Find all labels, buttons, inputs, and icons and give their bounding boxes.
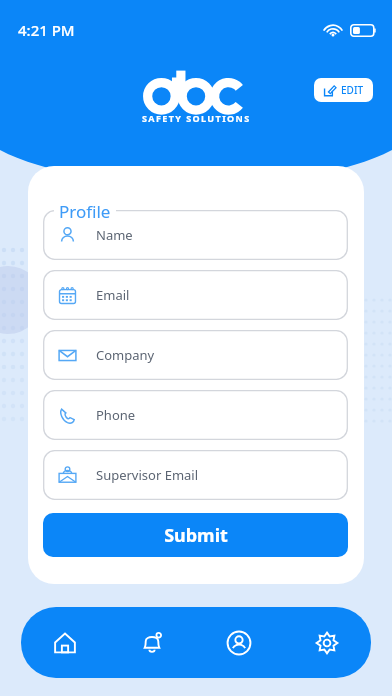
staticText: Phone xyxy=(96,406,136,424)
staticText: 4:21 PM xyxy=(18,20,75,40)
staticText: Supervisor Email xyxy=(96,466,199,484)
button[interactable]: Supervisor Email xyxy=(43,450,348,500)
button[interactable]: Profile xyxy=(195,607,283,678)
staticText: Company xyxy=(96,346,155,364)
button[interactable]: Notifications xyxy=(108,607,195,678)
staticText: Email xyxy=(96,286,130,304)
staticText: Profile xyxy=(59,200,111,223)
button[interactable]: Company xyxy=(43,330,348,380)
button[interactable]: Phone xyxy=(43,390,348,440)
staticText: Submit xyxy=(164,523,228,548)
button[interactable]: Submit xyxy=(43,513,348,557)
staticText: Name xyxy=(96,226,133,244)
button[interactable]: Email xyxy=(43,270,348,320)
button[interactable]: Name xyxy=(43,210,348,260)
staticText: EDIT xyxy=(341,83,364,97)
button[interactable]: EDIT xyxy=(314,78,373,102)
button[interactable]: Home xyxy=(21,607,108,678)
button[interactable]: Settings xyxy=(283,607,371,678)
staticText: SAFETY SOLUTIONS xyxy=(142,112,251,124)
